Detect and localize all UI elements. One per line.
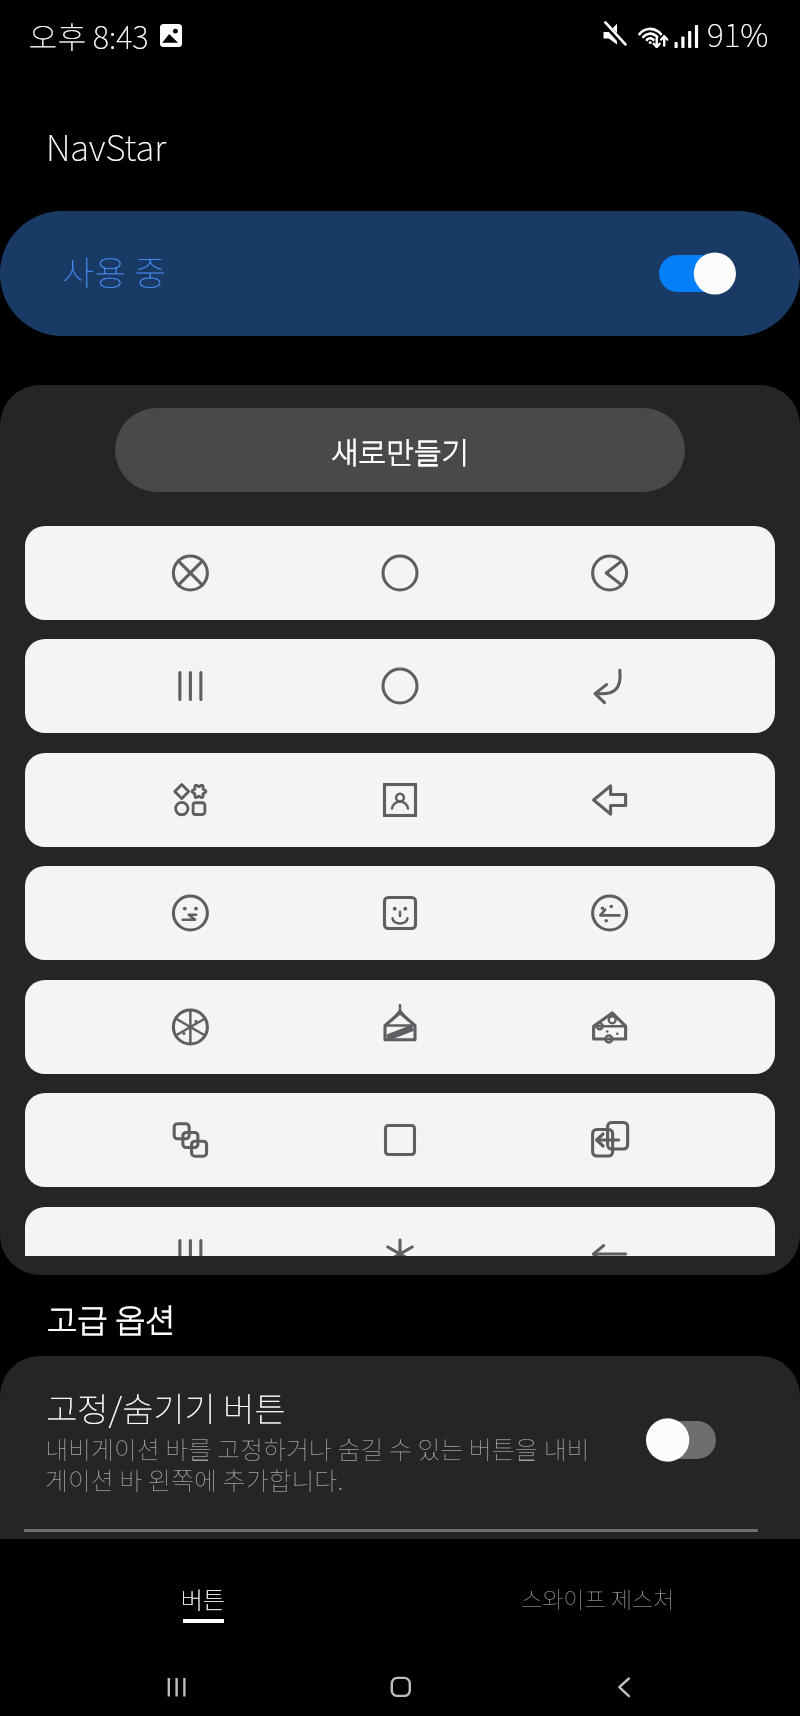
staticText: 오후 8:43 — [29, 13, 149, 58]
button[interactable]: Navigation bar layout 6 — [25, 1093, 775, 1187]
staticText: 내비게이션 바를 고정하거나 숨길 수 있는 버튼을 내비 게이션 바 왼쪽에 … — [45, 1430, 590, 1497]
staticText: 사용 중 — [62, 245, 167, 296]
staticText: 스와이프 제스처 — [521, 1581, 675, 1614]
button[interactable]: 스와이프 제스처 — [478, 1560, 718, 1638]
button[interactable]: Back — [595, 1657, 655, 1716]
button[interactable]: 새로만들기 — [115, 408, 685, 492]
staticText: 고급 옵션 — [47, 1295, 176, 1343]
staticText: 새로만들기 — [331, 429, 469, 472]
button[interactable]: 버튼 — [120, 1560, 286, 1638]
staticText: 버튼 — [181, 1581, 226, 1616]
button[interactable]: Navigation bar layout 5 — [25, 980, 775, 1074]
button[interactable]: Navigation bar layout 4 — [25, 866, 775, 960]
button[interactable]: Navigation bar layout 3 — [25, 753, 775, 847]
button[interactable]: 사용 중 — [0, 211, 800, 336]
button[interactable]: Recent apps — [147, 1657, 207, 1716]
staticText: 고정/숨기기 버튼 — [46, 1383, 286, 1432]
button[interactable]: 고정/숨기기 버튼 — [0, 1356, 800, 1539]
button[interactable]: Navigation bar layout 7 — [25, 1207, 775, 1256]
staticText: NavStar — [46, 120, 167, 171]
staticText: 91% — [707, 10, 769, 56]
button[interactable]: Home — [371, 1657, 431, 1716]
button[interactable]: Navigation bar layout 2 — [25, 639, 775, 733]
button[interactable]: Navigation bar layout 1 — [25, 526, 775, 620]
